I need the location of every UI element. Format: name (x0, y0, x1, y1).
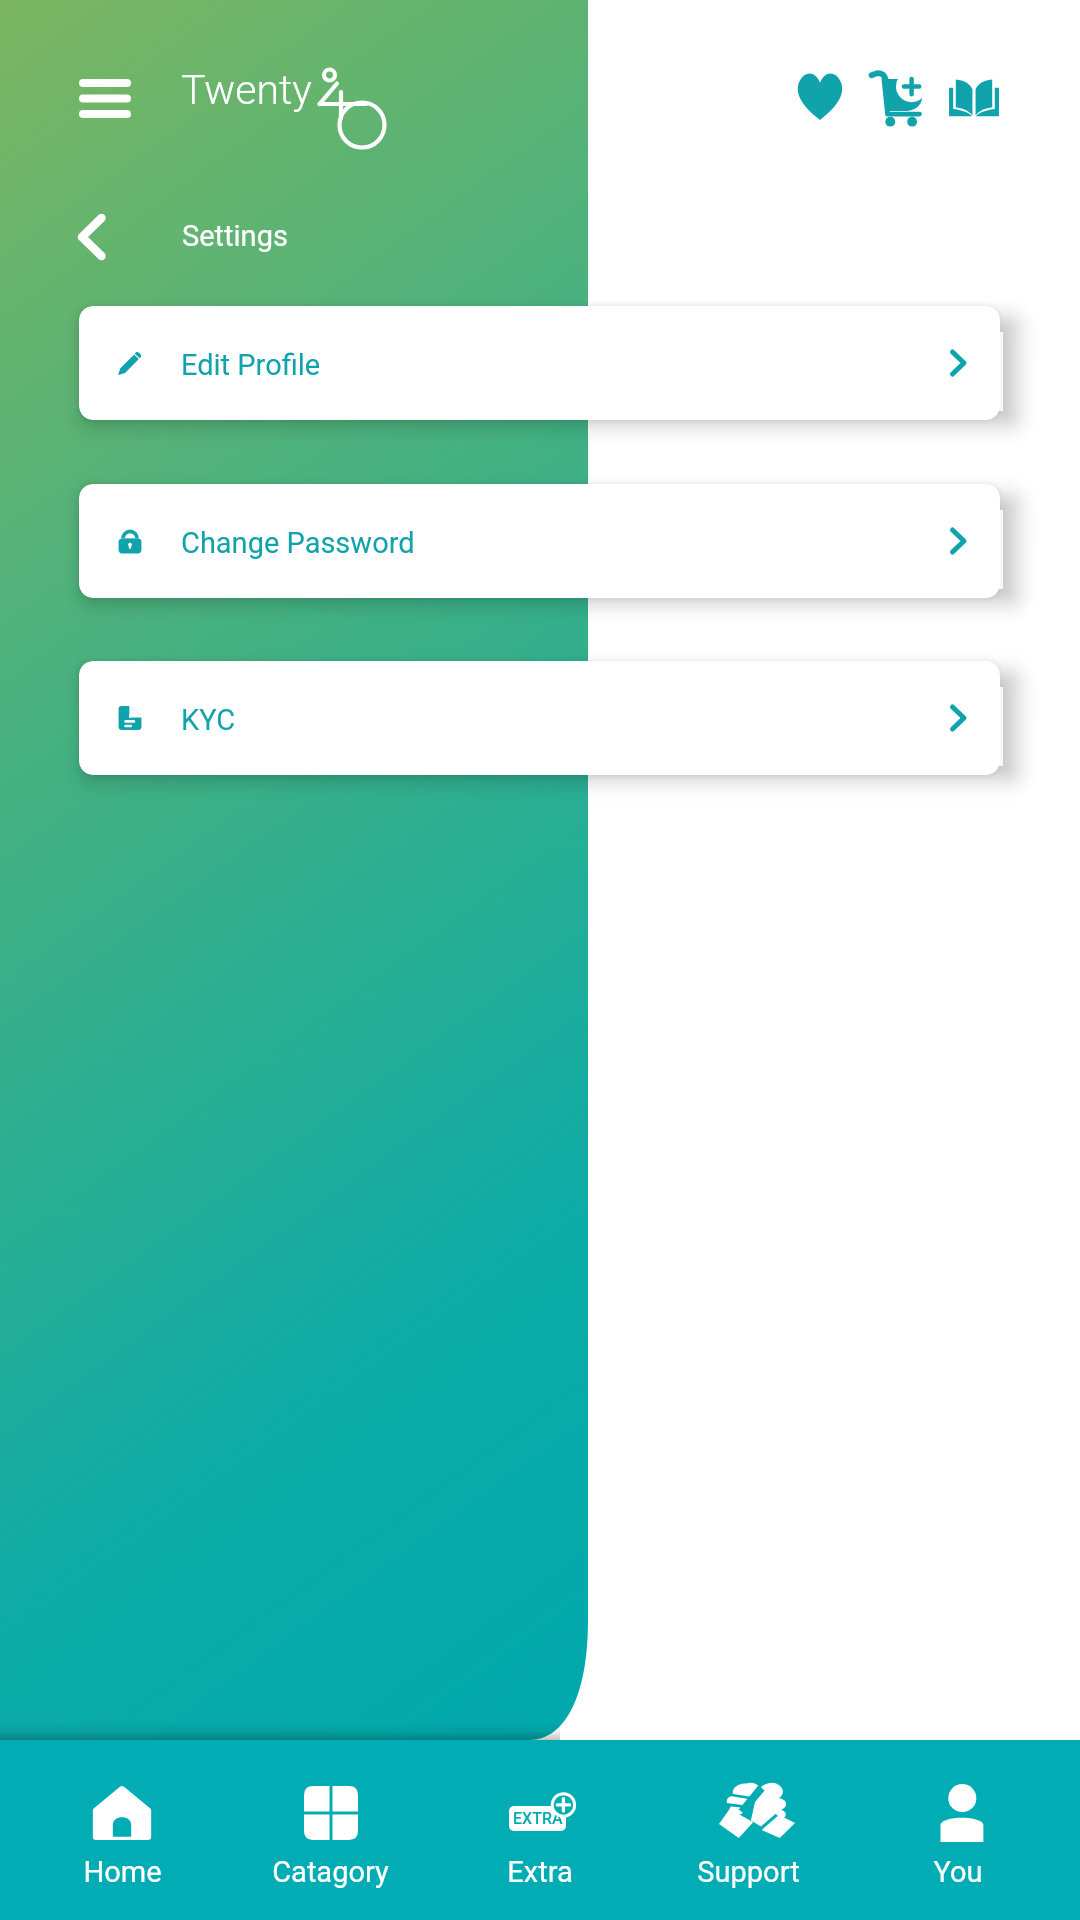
staticText: Catagory (272, 1855, 389, 1889)
button[interactable]: Wishlist (783, 61, 857, 132)
staticText: Settings (182, 219, 288, 253)
button[interactable]: KYC (79, 661, 1000, 775)
staticText: Extra (507, 1855, 573, 1889)
staticText: Twenty (181, 66, 312, 114)
staticText: Home (83, 1855, 162, 1889)
button[interactable]: EXTRA (435, 1740, 644, 1920)
staticText: Support (697, 1855, 800, 1889)
staticText: You (933, 1855, 983, 1889)
button[interactable]: Support (644, 1740, 853, 1920)
button[interactable]: Change Password (79, 484, 1000, 598)
staticText: Change Password (181, 526, 415, 560)
button[interactable]: Catagory (226, 1740, 435, 1920)
button[interactable]: Edit Profile (79, 306, 1000, 420)
button[interactable]: Home (18, 1740, 226, 1920)
button[interactable]: Back (60, 205, 124, 269)
button[interactable]: Catalog (936, 65, 1012, 130)
staticText: KYC (181, 703, 236, 737)
button[interactable]: Cart (858, 60, 934, 138)
button[interactable]: You (853, 1740, 1062, 1920)
staticText: EXTRA (513, 1809, 563, 1828)
button[interactable]: Menu (68, 66, 142, 124)
staticText: Edit Profile (181, 348, 321, 382)
